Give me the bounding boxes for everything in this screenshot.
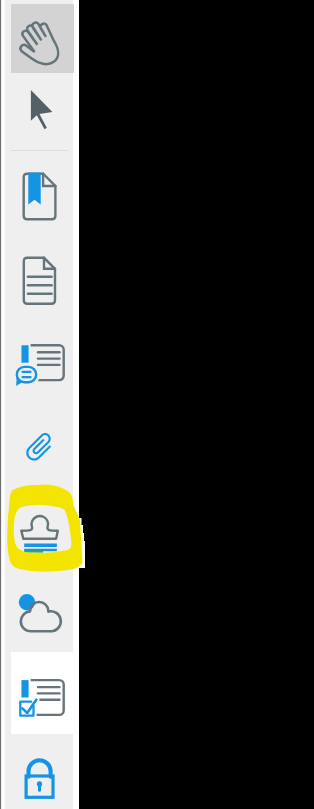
button[interactable]: Bookmarks	[11, 160, 74, 242]
button[interactable]: Select tool	[11, 73, 74, 142]
button[interactable]: Pages	[11, 242, 74, 324]
button[interactable]: Forms	[11, 652, 74, 734]
button[interactable]: Cloud	[11, 570, 74, 652]
button[interactable]: Pan tool	[11, 4, 74, 73]
button[interactable]: Stamps	[11, 488, 74, 570]
button[interactable]: Attachments	[11, 406, 74, 488]
button[interactable]: Comments	[11, 324, 74, 406]
button[interactable]: Security	[11, 734, 74, 809]
